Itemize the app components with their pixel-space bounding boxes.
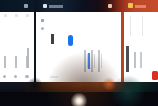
button[interactable]: Settings item: [3, 75, 6, 78]
button[interactable]: Tab icon: [24, 4, 28, 8]
button[interactable]: Settings item: [25, 75, 28, 78]
button[interactable]: Tab icon 2: [43, 4, 47, 8]
button[interactable]: Primary action: [68, 35, 73, 46]
button[interactable]: Tab icon 3: [108, 4, 112, 8]
button[interactable]: Tab icon 4: [128, 3, 133, 8]
button[interactable]: Settings item: [14, 75, 17, 78]
button[interactable]: App: [152, 71, 158, 80]
